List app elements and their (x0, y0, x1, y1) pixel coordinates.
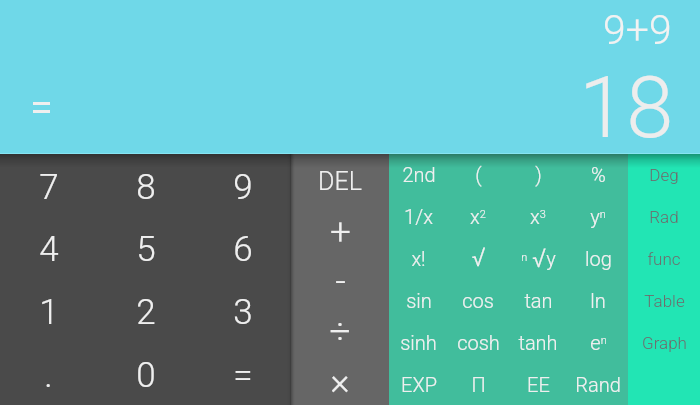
staticText: Rand (575, 373, 621, 396)
staticText: cosh (457, 331, 500, 354)
button[interactable]: . (0, 342, 97, 405)
button[interactable]: DEL (291, 154, 389, 205)
staticText: EXP (401, 373, 437, 396)
button[interactable]: Π (448, 363, 508, 405)
button[interactable]: Table (628, 280, 700, 322)
button[interactable]: + (291, 205, 389, 255)
staticText: 6 (233, 229, 253, 270)
staticText: tan (524, 289, 553, 312)
staticText: n √y (521, 243, 556, 273)
button[interactable]: ÷ (291, 305, 389, 355)
button[interactable]: en (568, 321, 628, 363)
button[interactable]: ( (448, 154, 508, 195)
button[interactable]: 7 (0, 154, 97, 216)
button[interactable]: % (568, 154, 628, 195)
button[interactable]: cos (448, 279, 508, 321)
staticText: 5 (136, 229, 156, 270)
staticText: 2nd (402, 163, 436, 186)
staticText: × (330, 360, 350, 403)
staticText: x! (411, 247, 426, 270)
button[interactable]: x! (389, 237, 448, 279)
staticText: cos (462, 289, 494, 312)
button[interactable]: log (568, 237, 628, 279)
staticText: tanh (518, 331, 558, 354)
staticText: √ (471, 242, 486, 272)
button[interactable]: ) (508, 154, 568, 195)
button[interactable]: 0 (97, 342, 194, 405)
button[interactable]: Graph (628, 322, 700, 364)
staticText: x3 (530, 205, 546, 228)
button[interactable]: 5 (97, 216, 194, 279)
staticText: ln (590, 289, 606, 312)
button[interactable]: x3 (508, 195, 568, 237)
staticText: 2 (136, 292, 156, 333)
staticText: = (233, 355, 253, 396)
staticText: DEL (318, 167, 362, 196)
staticText: 1/x (404, 205, 433, 228)
staticText: func (647, 249, 681, 269)
staticText: Deg (649, 165, 679, 185)
button[interactable]: 1/x (389, 195, 448, 237)
staticText: 0 (136, 355, 156, 396)
staticText: x2 (470, 205, 486, 228)
button[interactable]: Rad (628, 196, 700, 238)
staticText: % (591, 163, 606, 186)
staticText: yn (590, 205, 606, 228)
button[interactable]: n √y (508, 237, 568, 279)
button[interactable]: Deg (628, 154, 700, 196)
staticText: + (330, 210, 351, 253)
staticText: 9+9 (603, 6, 672, 54)
staticText: Table (644, 291, 685, 311)
button[interactable]: 6 (194, 216, 291, 279)
button[interactable]: 4 (0, 216, 97, 279)
button[interactable]: × (291, 355, 389, 405)
staticText: 18 (579, 58, 674, 158)
staticText: 7 (39, 167, 59, 208)
staticText: sinh (400, 331, 437, 354)
button[interactable]: sinh (389, 321, 448, 363)
staticText: Graph (642, 333, 687, 353)
button[interactable]: 8 (97, 154, 194, 216)
button[interactable]: 2nd (389, 154, 448, 195)
button[interactable]: Rand (568, 363, 628, 405)
button[interactable]: Menu (20, 86, 63, 129)
button[interactable]: = (194, 342, 291, 405)
button[interactable]: 3 (194, 279, 291, 342)
button[interactable]: √ (448, 237, 508, 279)
button[interactable]: tan (508, 279, 568, 321)
button[interactable]: 9 (194, 154, 291, 216)
staticText: 3 (233, 292, 253, 333)
button[interactable]: cosh (448, 321, 508, 363)
button[interactable]: x2 (448, 195, 508, 237)
button[interactable]: ln (568, 279, 628, 321)
staticText: - (335, 260, 346, 303)
staticText: 1 (39, 292, 59, 333)
button[interactable]: EXP (389, 363, 448, 405)
staticText: EE (527, 373, 550, 396)
button[interactable]: 1 (0, 279, 97, 342)
staticText: Rad (649, 207, 679, 227)
button[interactable]: tanh (508, 321, 568, 363)
staticText: ( (475, 163, 482, 186)
button[interactable]: yn (568, 195, 628, 237)
staticText: . (44, 355, 53, 396)
staticText: sin (406, 289, 432, 312)
staticText: log (585, 247, 612, 270)
staticText: 4 (39, 229, 59, 270)
button[interactable]: EE (508, 363, 568, 405)
button[interactable]: sin (389, 279, 448, 321)
staticText: 9 (233, 167, 253, 208)
staticText: ÷ (329, 310, 351, 353)
staticText: 8 (136, 167, 156, 208)
staticText: en (590, 331, 607, 354)
button[interactable]: func (628, 238, 700, 280)
staticText: Π (471, 373, 486, 396)
button[interactable]: - (291, 255, 389, 305)
staticText: ) (535, 163, 542, 186)
button[interactable]: 2 (97, 279, 194, 342)
